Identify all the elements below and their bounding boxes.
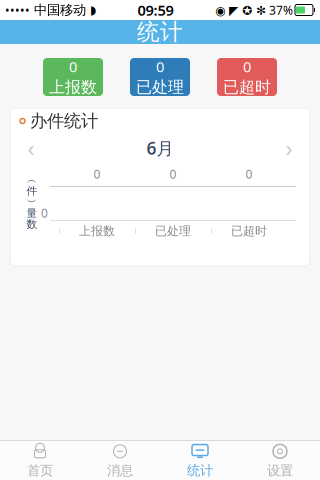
- staticText: 设置: [267, 462, 293, 479]
- staticText: ◉ ◤ ✪ ✻ 37%: [215, 2, 293, 18]
- button[interactable]: 0: [130, 58, 190, 96]
- staticText: 0: [169, 166, 176, 182]
- staticText: 办件统计: [30, 110, 98, 132]
- button[interactable]: 0: [217, 58, 277, 96]
- button[interactable]: 下一月: [274, 135, 304, 161]
- staticText: 已超时: [223, 77, 271, 97]
- button[interactable]: 消息: [80, 441, 160, 480]
- button[interactable]: 统计: [160, 441, 240, 480]
- staticText: ︶: [26, 195, 37, 208]
- staticText: 6月: [146, 136, 173, 159]
- staticText: 0: [245, 166, 252, 182]
- staticText: 上报数: [79, 224, 115, 238]
- staticText: 0: [156, 57, 164, 76]
- button[interactable]: 0: [43, 58, 103, 96]
- staticText: 上报数: [49, 77, 97, 97]
- staticText: ◗: [90, 3, 96, 17]
- button[interactable]: 上一月: [16, 135, 46, 161]
- staticText: 已处理: [136, 77, 184, 97]
- staticText: 中国移动: [30, 2, 90, 18]
- staticText: 统计: [187, 462, 213, 479]
- staticText: ︵: [26, 173, 37, 186]
- staticText: 首页: [27, 462, 53, 479]
- staticText: 已超时: [231, 224, 267, 238]
- staticText: 0: [41, 205, 48, 221]
- staticText: 量: [26, 207, 37, 220]
- staticText: ›: [285, 133, 292, 163]
- staticText: 已处理: [155, 224, 191, 238]
- staticText: 件: [26, 184, 37, 197]
- staticText: ‹: [27, 133, 34, 163]
- staticText: 统计: [137, 18, 183, 46]
- staticText: 0: [93, 166, 100, 182]
- staticText: •••••: [5, 2, 30, 18]
- staticText: 数: [26, 218, 37, 231]
- button[interactable]: 设置: [240, 441, 320, 480]
- staticText: 09:59: [137, 0, 173, 20]
- button[interactable]: 首页: [0, 441, 80, 480]
- staticText: 0: [69, 57, 77, 76]
- staticText: 消息: [107, 462, 133, 479]
- staticText: 0: [243, 57, 251, 76]
